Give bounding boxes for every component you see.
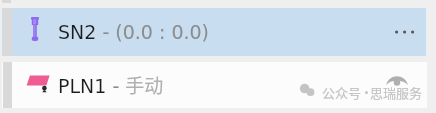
staticText: PLN1 - 手动	[58, 71, 164, 99]
staticText: SN2 - (0.0 : 0.0)	[58, 21, 210, 43]
button[interactable]: SN2 - (0.0 : 0.0)	[2, 8, 426, 56]
staticText: 公众号	[322, 83, 362, 102]
staticText: 思瑞服务	[370, 83, 423, 102]
button[interactable]: More options	[388, 8, 420, 56]
button[interactable]: PLN1 - 手动	[2, 62, 427, 108]
